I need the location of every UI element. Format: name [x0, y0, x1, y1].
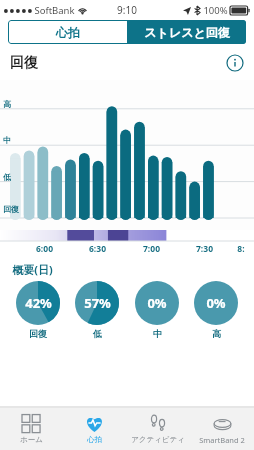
staticText: 42%: [25, 294, 52, 312]
staticText: 回復: [3, 204, 19, 214]
staticText: アクティビティ: [131, 435, 185, 444]
button[interactable]: 心拍: [8, 20, 127, 44]
staticText: 7:30: [196, 243, 213, 255]
button[interactable]: 42%: [10, 281, 66, 339]
staticText: 6:30: [89, 243, 106, 255]
staticText: 中: [153, 328, 162, 339]
staticText: 心拍: [87, 435, 102, 444]
staticText: 低: [93, 328, 102, 339]
staticText: 7:00: [143, 243, 160, 255]
staticText: ホーム: [20, 435, 43, 444]
staticText: 概要(日): [12, 262, 53, 277]
staticText: 低: [3, 172, 11, 182]
button[interactable]: 0%: [129, 281, 185, 339]
button[interactable]: 心拍: [63, 408, 126, 450]
staticText: 中: [3, 135, 11, 145]
staticText: 100%: [203, 4, 228, 17]
staticText: 高: [3, 99, 11, 109]
button[interactable]: 57%: [69, 281, 125, 339]
button[interactable]: アクティビティ: [126, 408, 190, 450]
staticText: 0%: [147, 294, 167, 312]
staticText: 回復: [10, 54, 38, 72]
staticText: SmartBand 2: [199, 435, 245, 445]
button[interactable]: 情報: [226, 54, 244, 72]
button[interactable]: SmartBand 2: [190, 408, 254, 450]
staticText: ストレスと回復: [144, 25, 230, 40]
staticText: 8:: [237, 243, 245, 255]
staticText: 高: [212, 328, 221, 339]
staticText: 心拍: [56, 25, 80, 40]
button[interactable]: ホーム: [0, 408, 63, 450]
button[interactable]: 0%: [188, 281, 244, 339]
staticText: 回復: [29, 328, 47, 339]
staticText: 9:10: [117, 3, 137, 17]
staticText: 0%: [206, 294, 226, 312]
button[interactable]: ストレスと回復: [127, 20, 246, 44]
staticText: 6:00: [36, 243, 53, 255]
staticText: 57%: [84, 294, 111, 312]
staticText: SoftBank: [34, 4, 75, 17]
